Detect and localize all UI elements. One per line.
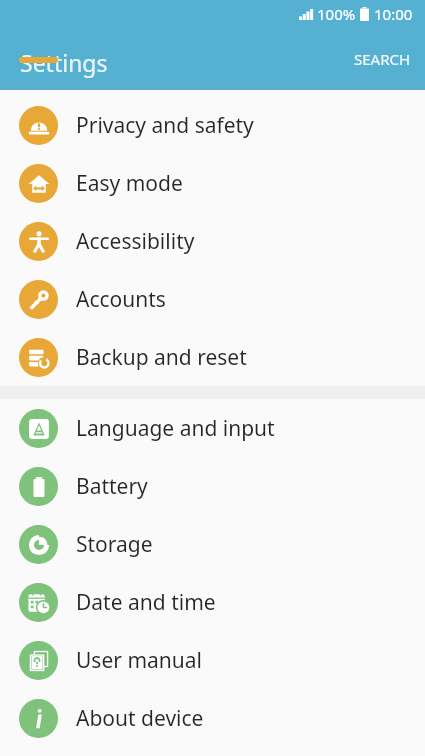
staticText: Privacy and safety: [76, 111, 254, 140]
button[interactable]: SEARCH: [340, 44, 425, 74]
button[interactable]: Battery: [0, 457, 425, 515]
staticText: 100%: [317, 4, 356, 24]
staticText: User manual: [76, 646, 202, 675]
button[interactable]: Easy mode: [0, 154, 425, 212]
button[interactable]: Date and time: [0, 573, 425, 631]
staticText: Easy mode: [76, 169, 183, 198]
other: Battery full: [360, 7, 369, 21]
button[interactable]: Accessibility: [0, 212, 425, 270]
button[interactable]: Privacy and safety: [0, 96, 425, 154]
staticText: Battery: [76, 472, 148, 501]
staticText: Accounts: [76, 285, 166, 314]
button[interactable]: User manual: [0, 631, 425, 689]
button[interactable]: Storage: [0, 515, 425, 573]
staticText: Settings: [20, 47, 108, 78]
button[interactable]: About device: [0, 689, 425, 747]
button[interactable]: Accounts: [0, 270, 425, 328]
staticText: Accessibility: [76, 227, 195, 256]
staticText: Storage: [76, 530, 153, 559]
staticText: Language and input: [76, 414, 275, 443]
staticText: About device: [76, 704, 204, 733]
staticText: Backup and reset: [76, 343, 247, 372]
other: Signal strength: [299, 9, 313, 20]
button[interactable]: Backup and reset: [0, 328, 425, 386]
staticText: SEARCH: [354, 49, 411, 69]
staticText: 10:00: [374, 4, 413, 24]
staticText: Date and time: [76, 588, 216, 617]
button[interactable]: Language and input: [0, 399, 425, 457]
